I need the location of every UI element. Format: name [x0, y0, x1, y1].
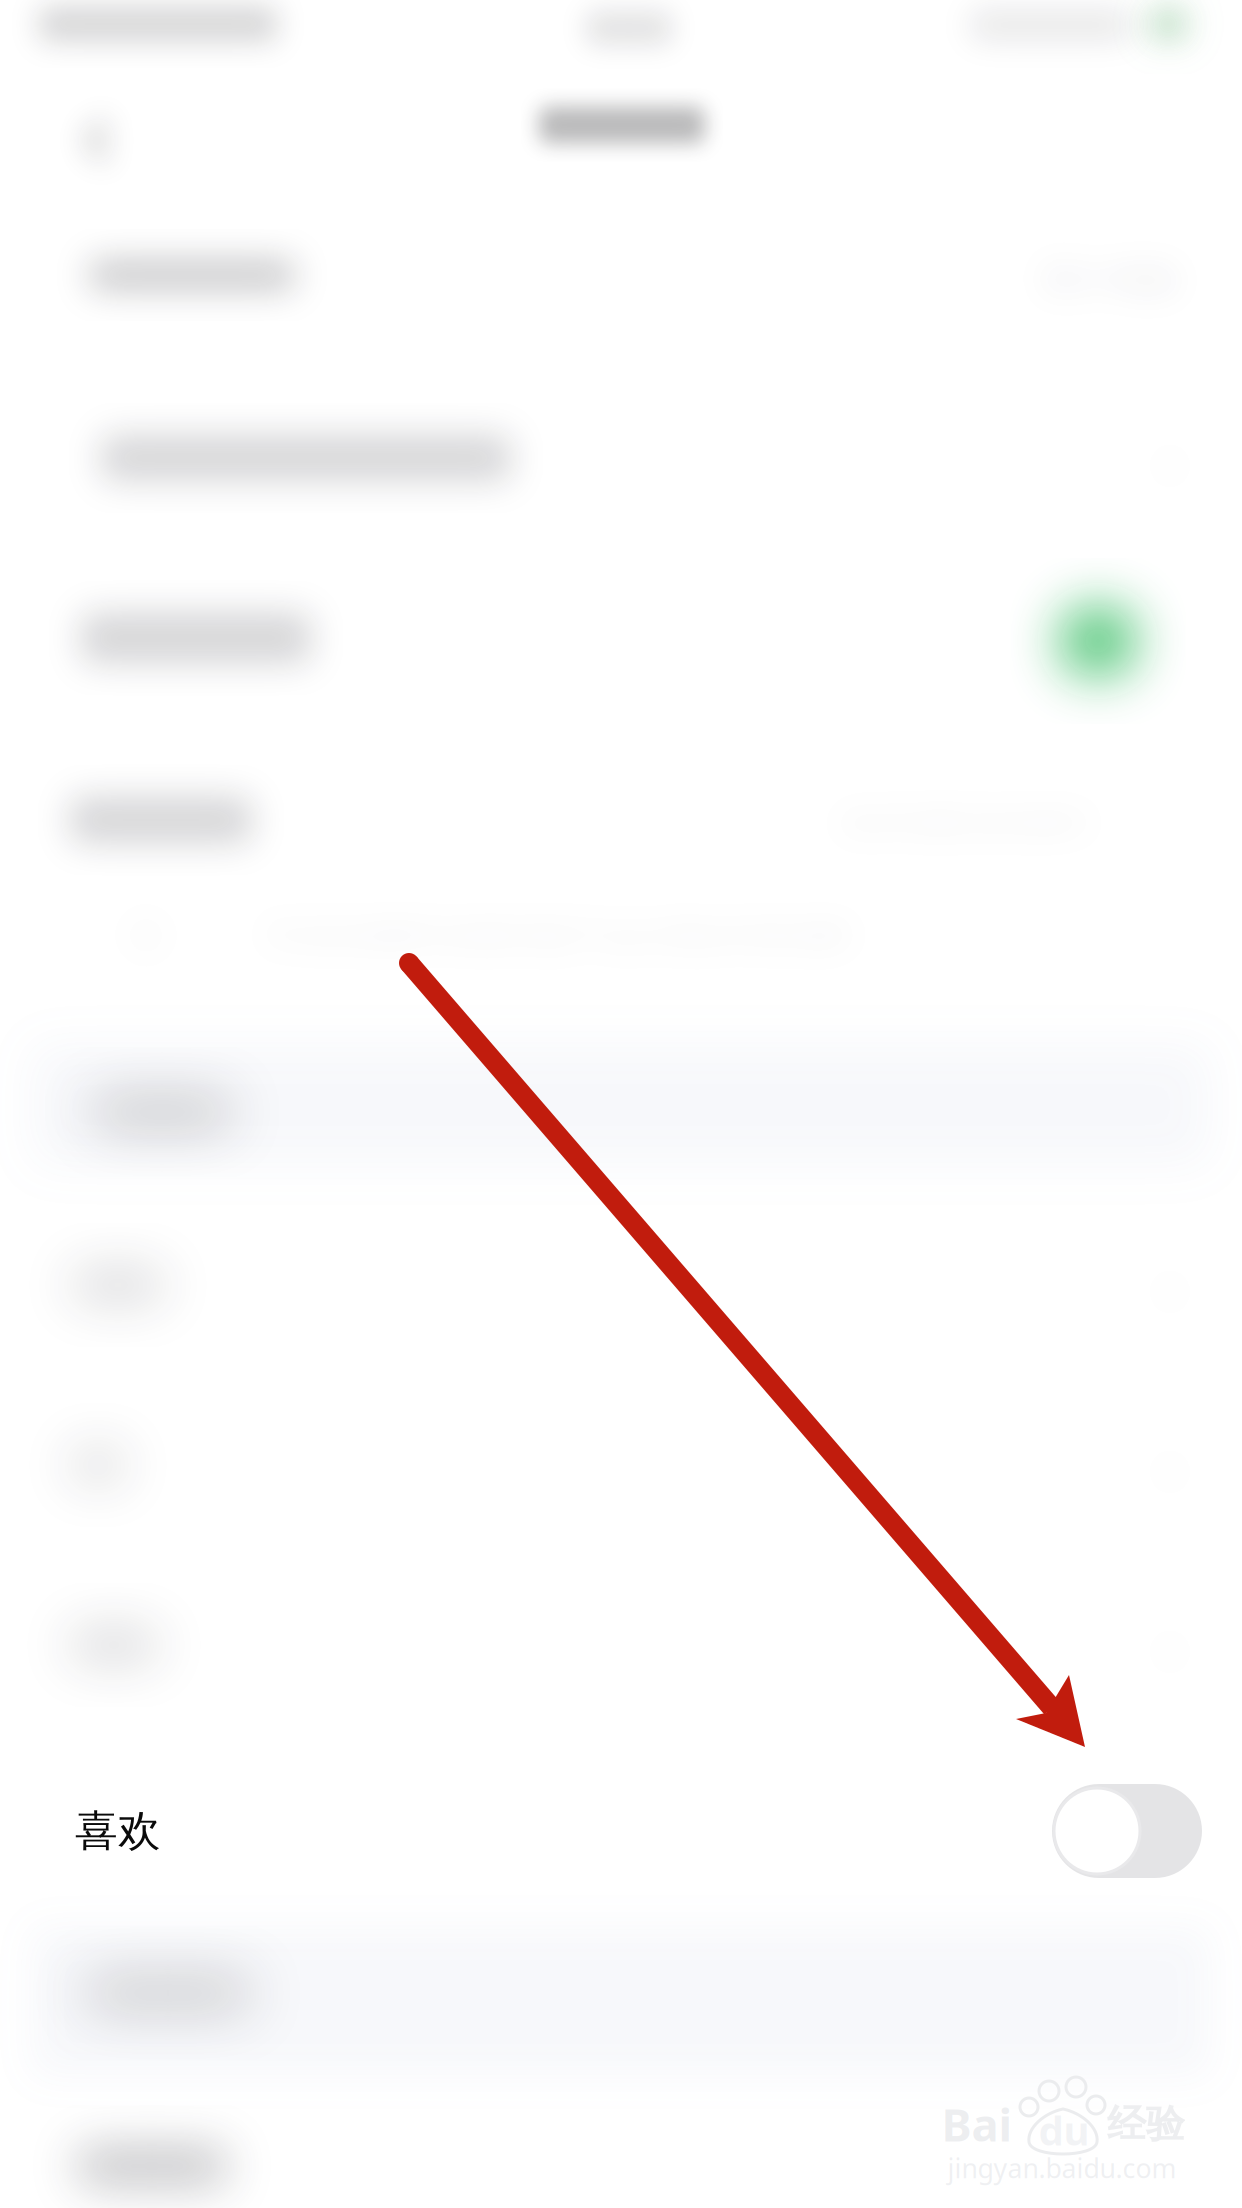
staticText: jingyan.baidu.com — [947, 2150, 1176, 2186]
staticText: du — [1038, 2103, 1089, 2156]
staticText: 经验 — [1107, 2100, 1185, 2148]
staticText: Bai — [941, 2094, 1012, 2154]
button[interactable]: 喜欢 — [0, 1737, 1242, 1925]
staticText: 喜欢 — [75, 1805, 161, 1857]
